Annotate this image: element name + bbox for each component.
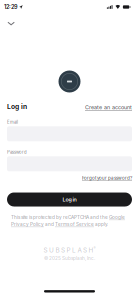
staticText: SUBSPLASH xyxy=(43,246,93,254)
staticText: Privacy Policy and Terms of Service appl… xyxy=(11,221,108,227)
staticText: Password xyxy=(7,150,27,155)
staticText: © 2025 Subsplash, Inc. xyxy=(44,255,95,261)
staticText: ® xyxy=(93,246,95,250)
button[interactable]: Forgot your password? xyxy=(82,175,132,181)
staticText: This site is protected by reCAPTCHA and … xyxy=(11,214,125,220)
staticText: Log in xyxy=(7,102,27,111)
button[interactable]: Log in xyxy=(7,192,132,206)
button[interactable]: Close xyxy=(3,17,19,30)
staticText: 12:29 xyxy=(4,4,18,10)
staticText: Log in xyxy=(62,196,76,203)
staticText: Forgot your password? xyxy=(82,175,132,181)
staticText: Create an account xyxy=(85,104,132,110)
button[interactable]: Create an account xyxy=(85,104,132,110)
staticText: Email xyxy=(7,120,18,125)
